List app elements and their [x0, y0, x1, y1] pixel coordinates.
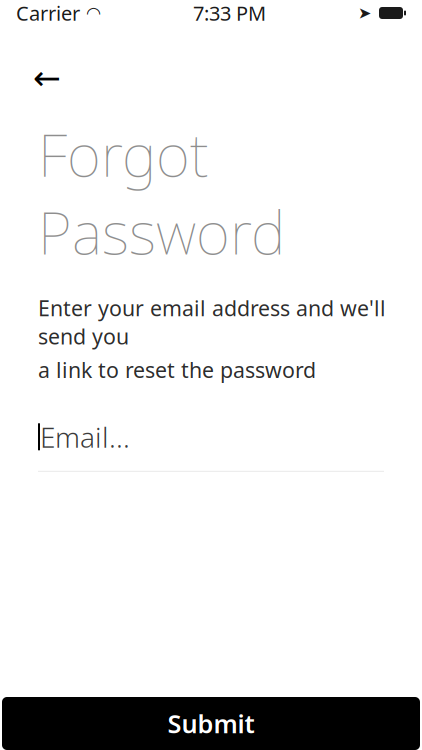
- staticText: a link to reset the password: [38, 355, 316, 384]
- staticText: Submit: [167, 707, 254, 740]
- staticText: ➤: [358, 4, 371, 22]
- button[interactable]: Back: [29, 61, 65, 95]
- staticText: Email...: [40, 418, 130, 455]
- staticText: ←: [33, 59, 61, 97]
- button[interactable]: Submit: [2, 697, 420, 750]
- staticText: Forgot Password: [38, 115, 285, 271]
- staticText: ◠: [80, 3, 101, 23]
- staticText: 7:33 PM: [193, 0, 266, 26]
- staticText: Enter your email address and we'll send …: [38, 294, 386, 350]
- staticText: Carrier: [16, 0, 80, 26]
